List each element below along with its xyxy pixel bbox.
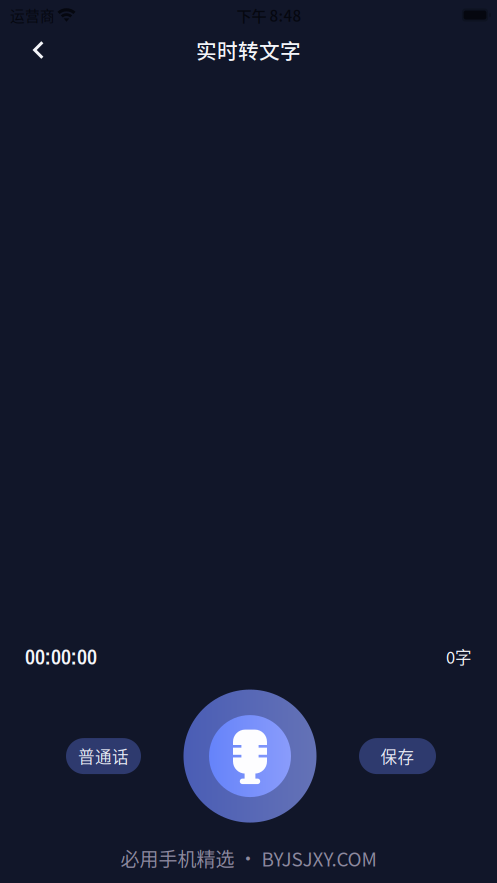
staticText: 保存 <box>380 744 414 768</box>
staticText: 运营商 <box>10 4 55 26</box>
staticText: 下午 8:48 <box>236 4 301 26</box>
staticText: 必用手机精选 • BYJSJXY.COM <box>120 845 376 872</box>
button[interactable]: 返回 <box>18 28 58 72</box>
staticText: 普通话 <box>78 744 129 768</box>
staticText: 0字 <box>446 645 472 668</box>
button[interactable]: 开始录音 <box>183 690 316 823</box>
staticText: 实时转文字 <box>196 35 301 65</box>
button[interactable]: 普通话 <box>66 738 141 774</box>
staticText: 00:00:00 <box>25 642 97 671</box>
button[interactable]: 保存 <box>359 738 436 774</box>
